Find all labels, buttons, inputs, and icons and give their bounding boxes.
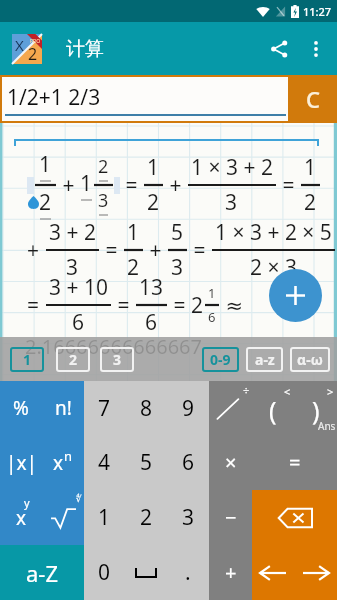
staticText: a-Z <box>26 558 59 588</box>
staticText: 1 <box>304 153 317 182</box>
staticText: = <box>168 291 191 320</box>
staticText: 5 <box>171 218 184 247</box>
button[interactable]: α-ω <box>290 347 330 372</box>
staticText: 1 <box>208 284 216 302</box>
staticText: . <box>185 558 191 587</box>
button[interactable]: 0 <box>84 545 125 600</box>
staticText: 3 <box>225 188 238 217</box>
button[interactable]: 3 <box>100 347 134 372</box>
staticText: 1 × 3 + 2 × 5 <box>215 218 332 247</box>
button[interactable]: 3 <box>167 490 209 545</box>
staticText: Ans <box>318 419 336 433</box>
button[interactable]: C <box>288 75 337 123</box>
button[interactable]: = <box>252 435 337 490</box>
staticText: 1 × 3 + 2 <box>191 153 273 182</box>
staticText: ÷ <box>243 383 250 398</box>
button[interactable]: 7 <box>84 381 125 435</box>
staticText: − <box>225 504 237 531</box>
staticText: ∜ <box>76 494 82 504</box>
button[interactable]: Move right <box>294 545 337 600</box>
button[interactable]: a-z <box>246 347 283 372</box>
staticText: + <box>57 171 80 200</box>
button[interactable]: 5 <box>125 435 167 490</box>
staticText: = <box>289 449 301 476</box>
button[interactable]: |x| <box>0 435 42 490</box>
staticText: + <box>27 236 45 265</box>
button[interactable]: Backspace <box>252 490 337 545</box>
staticText: > <box>327 384 334 399</box>
button[interactable]: a-Z <box>0 545 84 600</box>
button[interactable]: × <box>209 435 252 490</box>
staticText: 2 <box>140 503 153 532</box>
button[interactable]: 1 <box>84 490 125 545</box>
button[interactable]: 2 <box>125 490 167 545</box>
staticText: + <box>164 171 187 200</box>
staticText: 3 <box>113 350 122 369</box>
button[interactable]: x <box>42 435 84 490</box>
staticText: a-z <box>255 350 275 369</box>
staticText: × <box>225 449 237 476</box>
button[interactable]: Add <box>269 269 322 322</box>
staticText: ) <box>312 393 320 427</box>
staticText: 3 <box>98 188 109 213</box>
button[interactable]: 1 <box>10 347 44 372</box>
staticText: 6 <box>208 308 216 326</box>
button[interactable]: ( <box>251 381 294 435</box>
staticText: = <box>27 291 45 320</box>
staticText: 2 <box>39 188 52 217</box>
staticText: = <box>120 171 143 200</box>
staticText: 2 <box>191 291 204 320</box>
button[interactable]: . <box>167 545 209 600</box>
staticText: C <box>306 84 320 114</box>
button[interactable]: Space <box>125 545 167 600</box>
button[interactable]: Fraction <box>209 381 251 435</box>
button[interactable]: n! <box>42 381 84 435</box>
staticText: 6 <box>182 448 195 477</box>
button[interactable]: Move left <box>252 545 294 600</box>
button[interactable]: 9 <box>167 381 209 435</box>
staticText: n <box>64 447 73 465</box>
staticText: 2 <box>98 154 109 179</box>
staticText: 2 <box>69 350 78 369</box>
staticText: + <box>144 236 167 265</box>
button[interactable]: + <box>209 545 252 600</box>
staticText: x <box>53 450 64 476</box>
staticText: < <box>284 384 291 399</box>
button[interactable]: Share <box>259 29 299 69</box>
button[interactable]: x <box>0 490 42 545</box>
staticText: 3 + 10 <box>49 273 108 302</box>
staticText: 1 <box>80 169 93 198</box>
staticText: n! <box>55 395 72 421</box>
staticText: 2.16666666666667 <box>25 333 202 360</box>
staticText: 2 <box>28 43 38 65</box>
button[interactable]: More options <box>299 32 333 66</box>
staticText: 1 <box>23 350 32 369</box>
staticText: 4 <box>98 448 111 477</box>
staticText: 1 <box>39 150 52 179</box>
button[interactable]: − <box>209 490 252 545</box>
button[interactable]: 1/2+1 2/3 <box>2 77 288 121</box>
button[interactable]: 4 <box>84 435 125 490</box>
button[interactable]: 0-9 <box>202 347 239 372</box>
staticText: 1 <box>98 503 111 532</box>
staticText: 0 <box>98 558 111 587</box>
staticText: 0-9 <box>210 350 231 369</box>
staticText: 9 <box>182 394 195 423</box>
staticText: % <box>13 395 29 421</box>
button[interactable]: 6 <box>167 435 209 490</box>
button[interactable]: ) <box>294 381 337 435</box>
button[interactable]: % <box>0 381 42 435</box>
staticText: 1 <box>127 218 140 247</box>
staticText: = <box>100 236 123 265</box>
button[interactable]: 8 <box>125 381 167 435</box>
staticText: + <box>225 559 237 586</box>
button[interactable]: Root <box>42 490 84 545</box>
button[interactable]: 2 <box>56 347 90 372</box>
staticText: 6 <box>72 308 85 337</box>
staticText: 3 + 2 <box>49 218 96 247</box>
staticText: ≈ <box>220 291 244 320</box>
staticText: = <box>112 291 135 320</box>
staticText: 2 <box>127 253 140 282</box>
staticText: 3 <box>66 253 79 282</box>
staticText: = <box>277 171 300 200</box>
